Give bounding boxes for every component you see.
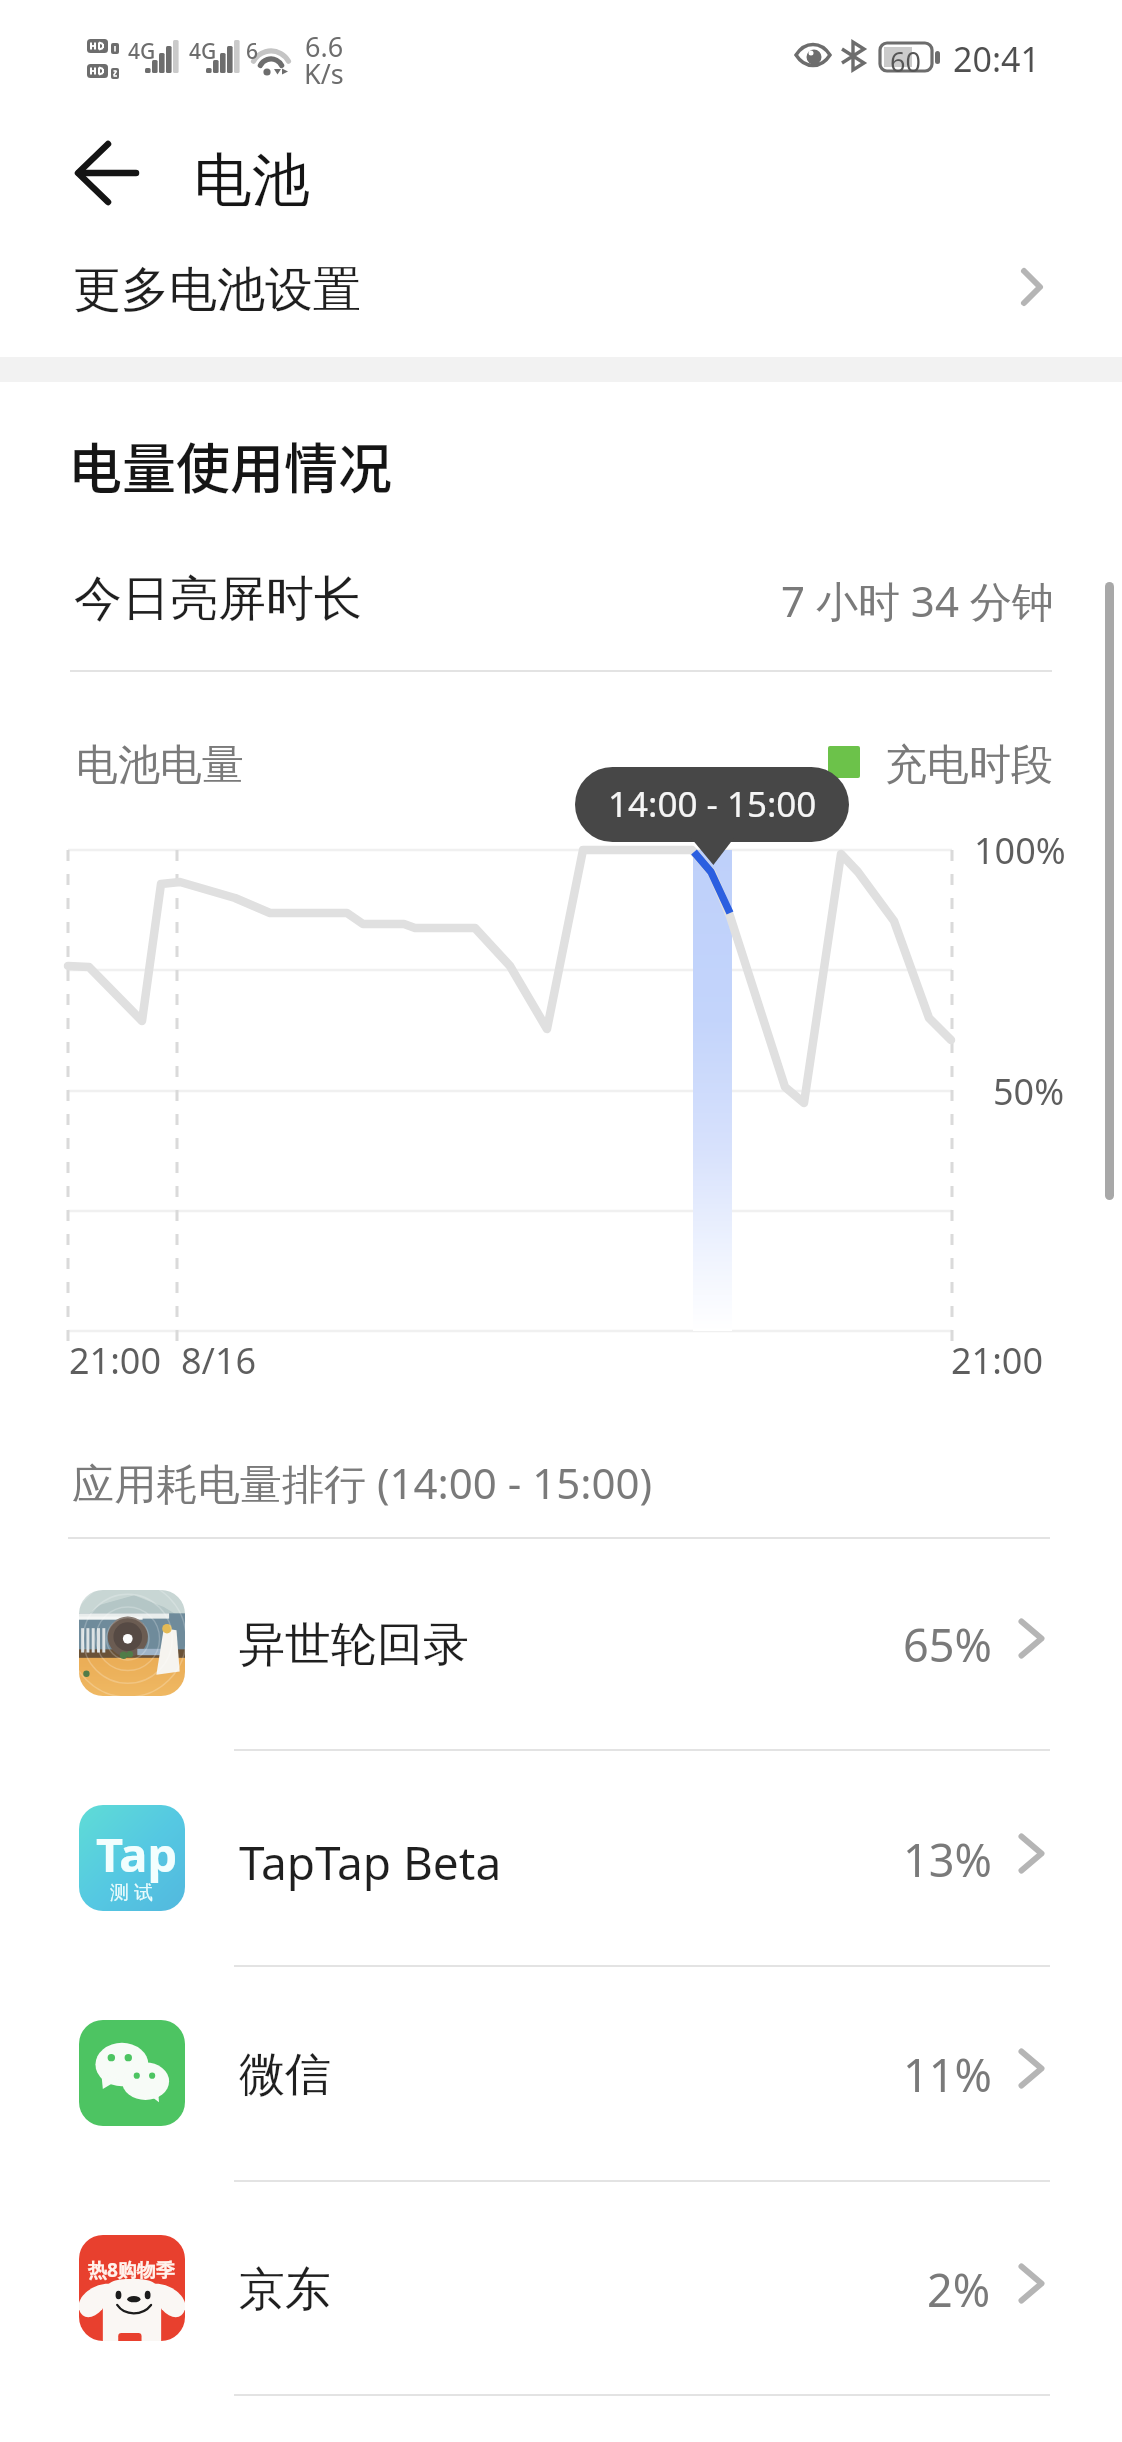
staticText: 京东	[239, 2261, 331, 2319]
staticText: 14:00 - 15:00	[608, 780, 817, 828]
staticText: 2%	[927, 2259, 991, 2320]
staticText: TapTap Beta	[239, 1831, 502, 1894]
staticText: 电池	[194, 144, 310, 217]
staticText: 11%	[903, 2044, 992, 2105]
staticText: Tap	[96, 1822, 178, 1886]
button[interactable]: 异世轮回录	[0, 1537, 1122, 1751]
staticText: K/s	[304, 55, 344, 92]
staticText: 测 试	[110, 1879, 153, 1905]
staticText: 今日亮屏时长	[74, 569, 362, 629]
staticText: 电量使用情况	[68, 426, 392, 504]
button[interactable]: Tap	[0, 1752, 1122, 1967]
button[interactable]: 热8购物季	[0, 2182, 1122, 2396]
button[interactable]: 更多电池设置	[0, 230, 1122, 342]
staticText: 热8购物季	[88, 2257, 175, 2283]
staticText: 100%	[974, 826, 1066, 875]
staticText: 4G	[189, 37, 217, 66]
staticText: 21:00	[951, 1336, 1044, 1385]
staticText: 8/16	[181, 1336, 257, 1385]
staticText: 6.6	[305, 28, 344, 65]
staticText: 50%	[993, 1067, 1065, 1116]
staticText: 6	[246, 37, 259, 66]
staticText: 4G	[128, 37, 156, 66]
staticText: 13%	[903, 1829, 992, 1890]
button[interactable]: Back	[48, 116, 168, 236]
staticText: 充电时段	[885, 739, 1053, 792]
staticText: 更多电池设置	[73, 260, 361, 320]
staticText: 微信	[239, 2046, 331, 2104]
button[interactable]: 微信	[0, 1967, 1122, 2182]
staticText: 7 小时 34 分钟	[781, 572, 1054, 629]
staticText: 电池电量	[76, 739, 244, 792]
staticText: 60	[890, 43, 921, 80]
staticText: 20:41	[953, 36, 1040, 82]
staticText: 21:00	[69, 1336, 162, 1385]
staticText: 应用耗电量排行 (14:00 - 15:00)	[72, 1454, 653, 1511]
staticText: 65%	[903, 1614, 992, 1675]
staticText: 异世轮回录	[239, 1616, 469, 1674]
